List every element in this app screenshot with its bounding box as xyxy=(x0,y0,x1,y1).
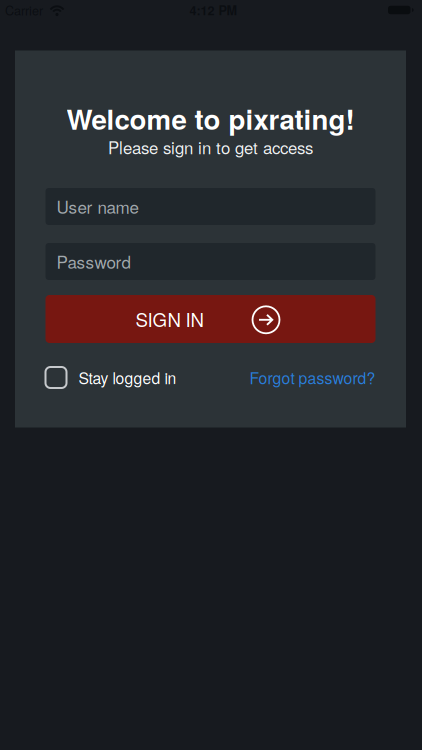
staticText: Stay logged in xyxy=(78,366,176,389)
staticText: Forgot password? xyxy=(249,366,375,389)
button[interactable]: Stay logged in xyxy=(45,366,176,389)
staticText: Password xyxy=(56,249,130,274)
button[interactable]: User name xyxy=(45,188,375,225)
button[interactable]: Password xyxy=(45,243,375,280)
staticText: Please sign in to get access xyxy=(108,135,313,159)
staticText: Carrier xyxy=(5,1,43,19)
staticText: 4:12 PM xyxy=(189,1,237,19)
button[interactable]: SIGN IN xyxy=(45,295,375,343)
button[interactable]: Forgot password? xyxy=(249,366,375,389)
staticText: SIGN IN xyxy=(135,306,203,332)
staticText: User name xyxy=(56,194,138,219)
staticText: Welcome to pixrating! xyxy=(66,99,354,138)
